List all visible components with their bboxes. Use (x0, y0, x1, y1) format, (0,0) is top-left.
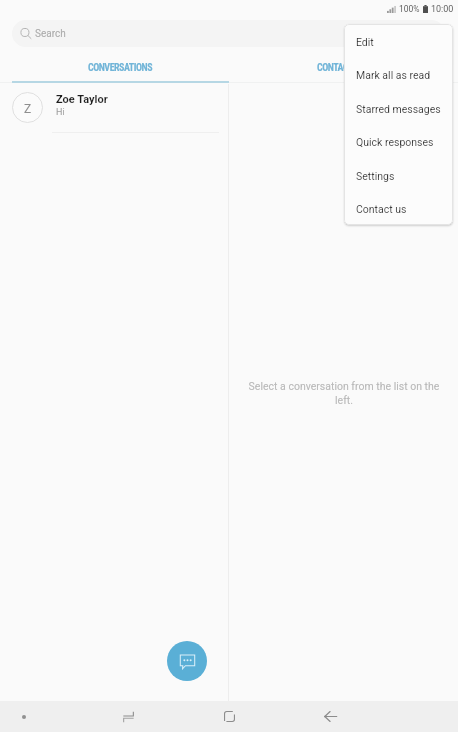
button[interactable]: Z (0, 84, 228, 130)
button[interactable]: CONTACTS (229, 58, 446, 86)
button[interactable]: Recents (108, 701, 148, 732)
staticText: 10:00 (431, 4, 454, 14)
button[interactable]: Edit (344, 24, 453, 57)
button[interactable]: Quick responses (344, 124, 453, 157)
staticText: CONTACTS (317, 62, 358, 74)
staticText: Quick responses (356, 136, 434, 148)
staticText: Edit (356, 36, 374, 48)
staticText: Z (24, 102, 32, 116)
staticText: CONVERSATIONS (88, 62, 153, 74)
button[interactable]: Starred messages (344, 91, 453, 124)
button[interactable]: Home (209, 701, 249, 732)
staticText: Mark all as read (356, 69, 431, 81)
staticText: 100% (399, 4, 420, 14)
button[interactable]: Mark all as read (344, 57, 453, 90)
staticText: Starred messages (356, 103, 441, 115)
staticText: Search (35, 28, 66, 40)
staticText: Settings (356, 170, 395, 182)
button[interactable]: Settings (344, 158, 453, 191)
button[interactable]: Contact us (344, 191, 453, 224)
button[interactable]: CONVERSATIONS (12, 58, 229, 86)
button[interactable]: Back (310, 701, 350, 732)
button[interactable]: Menu (4, 701, 44, 732)
staticText: Contact us (356, 203, 407, 215)
button[interactable]: New conversation (167, 641, 207, 681)
staticText: Zoe Taylor (56, 93, 108, 106)
staticText: Hi (56, 107, 65, 118)
staticText: Select a conversation from the list on t… (246, 380, 442, 406)
button[interactable]: Search (12, 20, 445, 47)
